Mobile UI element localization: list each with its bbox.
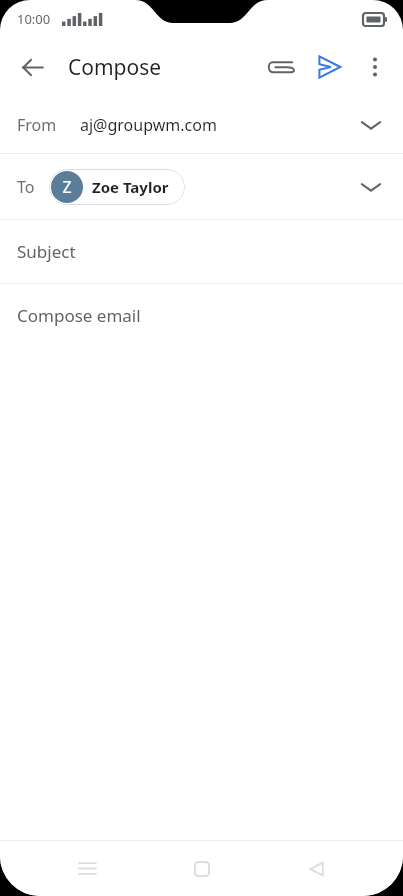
button[interactable]: To: [0, 154, 403, 219]
staticText: Z: [62, 176, 72, 198]
button[interactable]: More options: [353, 45, 397, 89]
button[interactable]: Subject: [0, 220, 403, 283]
staticText: Compose: [68, 53, 162, 82]
button[interactable]: Attach file: [257, 43, 305, 91]
staticText: Subject: [17, 240, 76, 263]
staticText: From: [17, 114, 57, 136]
button[interactable]: Back: [8, 43, 56, 91]
button[interactable]: Home: [174, 841, 230, 896]
button[interactable]: Z: [49, 169, 185, 205]
staticText: Zoe Taylor: [92, 177, 169, 197]
staticText: aj@groupwm.com: [80, 114, 217, 136]
button[interactable]: Back: [288, 841, 344, 896]
staticText: To: [17, 176, 35, 198]
staticText: 10:00: [17, 10, 51, 28]
staticText: Compose email: [17, 304, 141, 327]
button[interactable]: Compose email: [0, 284, 403, 347]
button[interactable]: From: [0, 96, 403, 153]
button[interactable]: Recent apps: [59, 841, 115, 896]
button[interactable]: Send: [305, 43, 353, 91]
